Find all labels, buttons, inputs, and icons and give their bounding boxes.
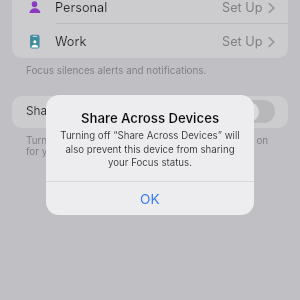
staticText: Share Across Devices bbox=[26, 104, 149, 118]
staticText: Share Across Devices bbox=[46, 110, 254, 126]
staticText: Set Up bbox=[222, 0, 263, 15]
staticText: Work bbox=[55, 34, 87, 49]
button[interactable]: Work bbox=[12, 24, 288, 57]
staticText: for your account. bbox=[26, 145, 106, 157]
button[interactable]: Share Across Devices bbox=[12, 96, 288, 128]
button[interactable]: Personal bbox=[12, 0, 288, 23]
staticText: OK bbox=[140, 191, 160, 207]
staticText: Turning off “Share Across Devices” will … bbox=[55, 130, 245, 168]
staticText: Turning on “Share Across Devices” shares… bbox=[26, 134, 269, 146]
staticText: Set Up bbox=[222, 34, 263, 49]
button[interactable]: Share Across Devices toggle bbox=[237, 100, 275, 123]
staticText: Personal bbox=[55, 0, 108, 15]
staticText: Focus silences alerts and notifications. bbox=[26, 64, 207, 76]
button[interactable]: OK bbox=[46, 182, 254, 215]
